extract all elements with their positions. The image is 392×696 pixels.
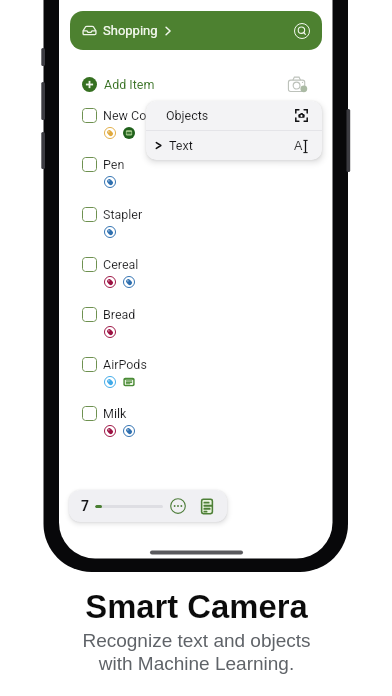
- staticText: Smart Camera: [85, 588, 308, 625]
- staticText: Text: [169, 138, 193, 153]
- button[interactable]: Search: [294, 23, 310, 39]
- staticText: Stapler: [103, 207, 143, 222]
- staticText: Recognize text and objects with Machine …: [82, 630, 311, 674]
- staticText: AirPods: [103, 357, 147, 372]
- button[interactable]: Camera: [288, 76, 310, 92]
- staticText: Shopping: [103, 23, 158, 38]
- staticText: Milk: [103, 406, 127, 421]
- staticText: Bread: [103, 307, 136, 322]
- button[interactable]: Toggle AirPods: [82, 357, 97, 372]
- staticText: Pen: [103, 157, 125, 172]
- button[interactable]: Toggle Cereal: [82, 257, 97, 272]
- button[interactable]: Shopping: [70, 11, 322, 50]
- button[interactable]: Notes: [200, 498, 214, 515]
- staticText: Objects: [166, 108, 209, 123]
- button[interactable]: Add Item: [82, 74, 310, 94]
- button[interactable]: Toggle Stapler: [82, 207, 97, 222]
- button[interactable]: 7: [69, 490, 227, 522]
- staticText: A: [294, 139, 303, 153]
- button[interactable]: Toggle New Computer: [82, 108, 97, 123]
- staticText: 7: [81, 498, 90, 514]
- button[interactable]: Objects: [166, 101, 308, 130]
- button[interactable]: Toggle Bread: [82, 307, 97, 322]
- staticText: Add Item: [104, 77, 155, 92]
- button[interactable]: Toggle Pen: [82, 157, 97, 172]
- button[interactable]: Text: [154, 131, 308, 160]
- button[interactable]: More options: [170, 498, 186, 514]
- staticText: New Computer: [103, 108, 187, 123]
- staticText: Cereal: [103, 257, 139, 272]
- button[interactable]: Toggle Milk: [82, 406, 97, 421]
